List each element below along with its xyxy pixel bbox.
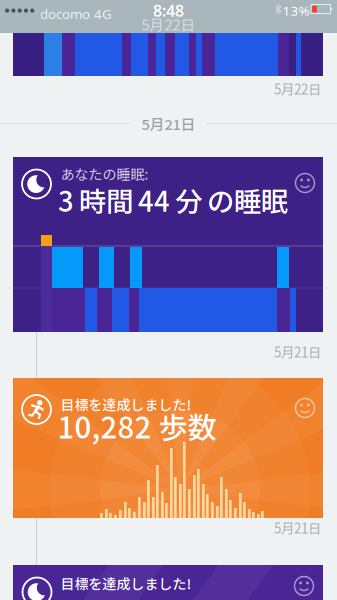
staticText: 3 時間 44 分 の睡眠 — [58, 180, 288, 220]
staticText: 8:48 — [153, 0, 184, 21]
staticText: docomo — [40, 5, 90, 23]
staticText: 5月21日 — [274, 518, 321, 537]
staticText: 5月22日 — [274, 79, 321, 98]
button[interactable] — [13, 33, 323, 76]
button[interactable]: 目標を達成しました! — [13, 378, 323, 518]
button[interactable]: 気分を記録 — [292, 170, 318, 196]
button[interactable]: 気分を記録 — [292, 395, 318, 421]
button[interactable]: 気分を記録 — [291, 573, 317, 599]
staticText: 目標を達成しました! — [60, 573, 191, 593]
staticText: 5月21日 — [141, 113, 195, 134]
staticText: 5月22日 — [141, 13, 195, 35]
button[interactable]: あなたの睡眠: — [13, 157, 323, 332]
staticText: 13% — [282, 2, 309, 19]
staticText: 4G — [94, 5, 112, 23]
staticText: あなたの睡眠: — [60, 163, 148, 184]
staticText: 10,282 歩数 — [57, 404, 216, 447]
staticText: 5月21日 — [274, 342, 321, 361]
staticText: 目標を達成しました! — [60, 394, 191, 414]
button[interactable]: 目標を達成しました! — [13, 565, 323, 600]
